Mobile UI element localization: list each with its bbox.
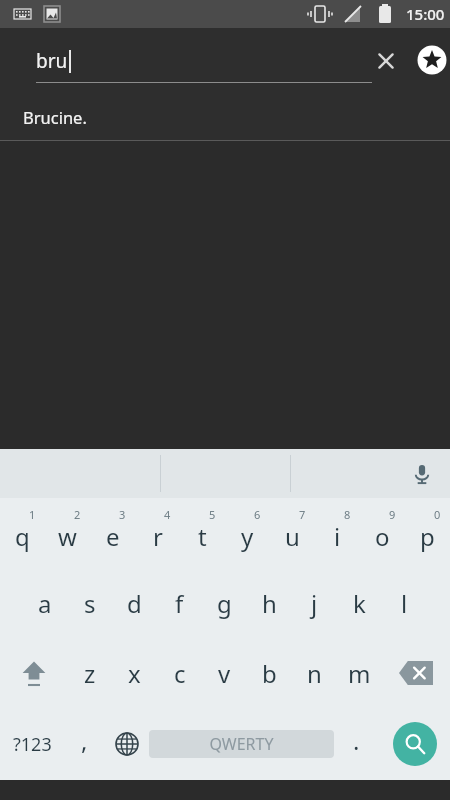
button[interactable]: h [247,568,292,638]
button[interactable]: x [112,638,157,708]
button[interactable]: 5 [180,498,225,568]
staticText: 5 [209,507,216,522]
staticText: . [353,724,360,757]
button[interactable]: 8 [315,498,360,568]
button[interactable]: b [247,638,292,708]
button[interactable]: ?123 [0,708,64,780]
staticText: r [153,520,163,553]
staticText: c [174,657,186,690]
button[interactable]: c [157,638,202,708]
button[interactable]: Favorites [416,44,448,76]
button[interactable]: Backspace [382,638,450,708]
staticText: QWERTY [209,733,274,755]
staticText: j [311,587,318,620]
button[interactable]: f [157,568,202,638]
staticText: 7 [299,507,306,522]
button[interactable]: Shift [0,638,67,708]
button[interactable]: Voice input [402,454,442,494]
button[interactable]: . [334,708,379,780]
button[interactable]: j [292,568,337,638]
staticText: g [217,587,232,620]
staticText: d [127,587,142,620]
staticText: b [262,657,277,690]
staticText: o [375,520,390,553]
staticText: x [128,657,141,690]
staticText: f [175,587,184,620]
button[interactable]: 0 [405,498,450,568]
button[interactable]: 7 [270,498,315,568]
staticText: a [38,587,52,620]
button[interactable]: g [202,568,247,638]
staticText: l [401,587,408,620]
button[interactable]: v [202,638,247,708]
button[interactable]: Clear text [368,43,404,79]
button[interactable]: Brucine. [0,94,450,140]
button[interactable]: l [382,568,427,638]
staticText: u [285,520,300,553]
staticText: 15:00 [406,4,445,24]
staticText: 2 [74,507,81,522]
staticText: w [58,520,77,553]
staticText: 8 [344,507,351,522]
staticText: 3 [119,507,126,522]
staticText: s [84,587,96,620]
staticText: n [307,657,322,690]
button[interactable]: a [22,568,67,638]
staticText: y [241,520,254,553]
staticText: e [106,520,120,553]
staticText: h [262,587,277,620]
button[interactable]: m [337,638,382,708]
staticText: 6 [254,507,261,522]
button[interactable]: z [67,638,112,708]
staticText: 0 [434,507,441,522]
button[interactable]: s [67,568,112,638]
staticText: bru [36,48,68,74]
button[interactable]: k [337,568,382,638]
button[interactable]: 1 [0,498,45,568]
staticText: p [420,520,435,553]
button[interactable]: bru [22,33,372,89]
button[interactable]: 9 [360,498,405,568]
staticText: i [334,520,341,553]
staticText: ?123 [13,732,52,757]
button[interactable]: 3 [90,498,135,568]
button[interactable]: 4 [135,498,180,568]
staticText: k [353,587,366,620]
button[interactable]: n [292,638,337,708]
staticText: , [81,724,88,757]
button[interactable]: 6 [225,498,270,568]
button[interactable]: 2 [45,498,90,568]
button[interactable]: , [64,708,104,780]
staticText: z [84,657,96,690]
staticText: 9 [389,507,396,522]
staticText: m [348,657,371,690]
staticText: 4 [164,507,171,522]
staticText: q [15,520,30,553]
button[interactable]: Search [379,708,450,780]
button[interactable]: d [112,568,157,638]
staticText: t [198,520,207,553]
staticText: Brucine. [23,106,87,128]
button[interactable]: Change language [104,708,149,780]
staticText: 1 [29,507,36,522]
staticText: v [218,657,231,690]
button[interactable]: QWERTY [149,708,334,780]
